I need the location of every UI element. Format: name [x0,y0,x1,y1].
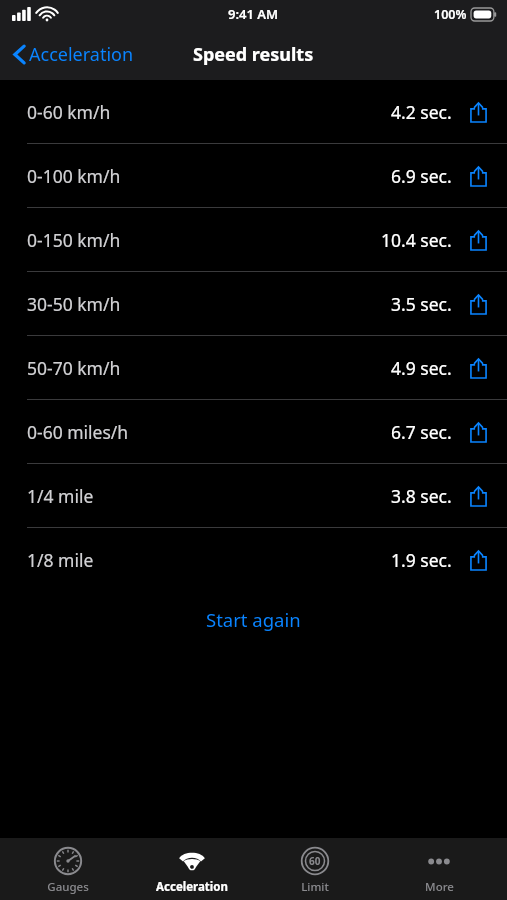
staticText: 0-60 km/h [27,100,111,124]
staticText: 1.9 sec. [391,548,452,572]
staticText: More [425,879,454,895]
button[interactable]: Acceleration [137,843,247,895]
button[interactable]: 50-70 km/h [0,336,507,399]
staticText: 4.9 sec. [391,356,452,380]
staticText: 4.2 sec. [391,100,452,124]
staticText: 100% [434,6,467,23]
staticText: 3.8 sec. [391,484,452,508]
button[interactable]: Share 0-60 km/h result [463,97,493,127]
button[interactable]: Share 50-70 km/h result [463,353,493,383]
button[interactable]: Share 30-50 km/h result [463,289,493,319]
staticText: 10.4 sec. [381,228,452,252]
button[interactable]: 30-50 km/h [0,272,507,335]
staticText: 3.5 sec. [391,292,452,316]
staticText: 6.9 sec. [391,164,452,188]
staticText: Start again [206,607,301,632]
staticText: 1/8 mile [27,548,94,572]
button[interactable]: Share 0-100 km/h result [463,161,493,191]
button[interactable]: 0-60 miles/h [0,400,507,463]
staticText: 0-60 miles/h [27,420,129,444]
button[interactable]: Share 0-60 miles/h result [463,417,493,447]
staticText: 0-100 km/h [27,164,121,188]
staticText: Acceleration [29,42,134,67]
button[interactable]: 1/4 mile [0,464,507,527]
staticText: 50-70 km/h [27,356,121,380]
staticText: 1/4 mile [27,484,94,508]
button[interactable]: Share 1/4 mile result [463,481,493,511]
button[interactable]: 60 [260,843,370,895]
button[interactable]: 1/8 mile [0,528,507,591]
button[interactable]: 0-60 km/h [0,80,507,143]
button[interactable]: Start again [0,595,507,643]
staticText: Limit [301,879,329,895]
button[interactable]: 0-100 km/h [0,144,507,207]
button[interactable]: More [384,843,494,895]
button[interactable]: Share 1/8 mile result [463,545,493,575]
staticText: 9:41 AM [228,5,279,23]
button[interactable]: 0-150 km/h [0,208,507,271]
staticText: 30-50 km/h [27,292,121,316]
staticText: Speed results [193,42,314,67]
button[interactable]: Gauges [13,843,123,895]
staticText: Acceleration [156,879,228,895]
staticText: 60 [309,854,321,868]
button[interactable]: Share 0-150 km/h result [463,225,493,255]
staticText: 6.7 sec. [391,420,452,444]
staticText: Gauges [47,879,89,895]
staticText: 0-150 km/h [27,228,121,252]
button[interactable]: Acceleration [0,36,144,73]
